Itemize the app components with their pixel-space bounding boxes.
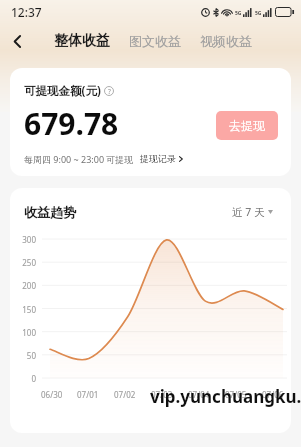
staticText: 近 7 天 xyxy=(232,205,265,219)
staticText: 07/04 xyxy=(188,389,210,400)
button[interactable]: 去提现 xyxy=(216,111,278,140)
staticText: 07/05 xyxy=(225,389,247,400)
staticText: 300 xyxy=(10,234,36,245)
staticText: 07/02 xyxy=(114,389,136,400)
button[interactable]: 近 7 天 xyxy=(228,201,277,223)
button[interactable]: 提现记录 xyxy=(140,151,184,166)
button[interactable]: 返回 xyxy=(0,24,34,58)
staticText: 0 xyxy=(10,373,36,384)
staticText: 150 xyxy=(10,304,36,315)
staticText: 50 xyxy=(10,350,36,361)
staticText: 图文收益 xyxy=(129,33,181,49)
staticText: 5G xyxy=(255,10,262,17)
staticText: 06/30 xyxy=(41,389,63,400)
button[interactable]: 整体收益 xyxy=(52,27,112,55)
staticText: 679.78 xyxy=(24,103,119,144)
staticText: 整体收益 xyxy=(54,32,110,50)
staticText: 视频收益 xyxy=(200,33,252,49)
staticText: 07/01 xyxy=(77,389,99,400)
staticText: 提现记录 xyxy=(140,153,176,164)
staticText: 收益趋势 xyxy=(24,204,76,220)
staticText: 200 xyxy=(10,280,36,291)
staticText: vip.yunchuangku.c xyxy=(150,385,301,408)
staticText: 可提现金额(元) xyxy=(24,83,101,99)
staticText: 07/03 xyxy=(151,389,173,400)
staticText: 去提现 xyxy=(229,118,265,133)
staticText: 250 xyxy=(10,257,36,268)
staticText: 12:37 xyxy=(11,4,42,20)
staticText: 100 xyxy=(10,327,36,338)
staticText: 5G xyxy=(235,10,242,17)
button[interactable]: 视频收益 xyxy=(198,28,254,54)
button[interactable]: 说明 xyxy=(104,86,114,96)
staticText: 07/06 xyxy=(262,389,284,400)
button[interactable]: 图文收益 xyxy=(127,28,183,54)
staticText: ? xyxy=(108,87,111,96)
staticText: 每周四 9:00 ~ 23:00 可提现 xyxy=(24,153,134,165)
